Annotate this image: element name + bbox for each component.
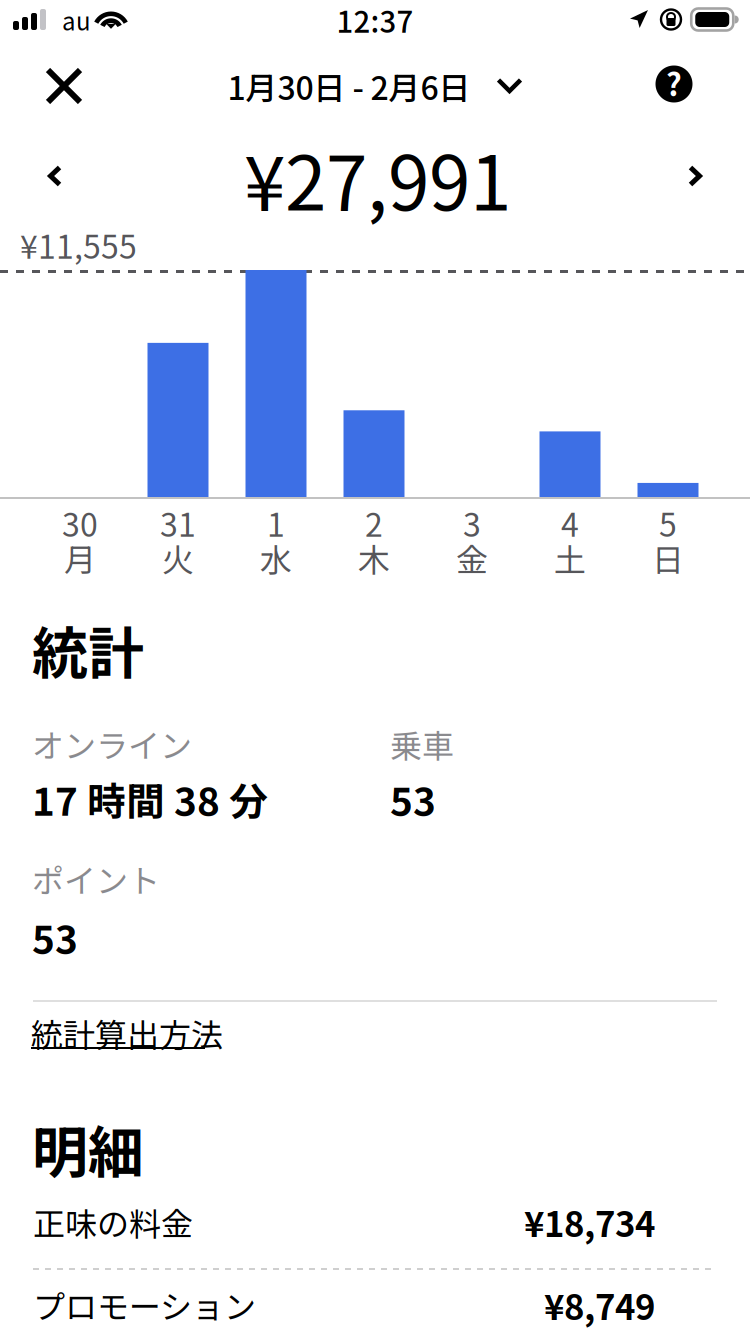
staticText: ¥27,991 bbox=[244, 124, 511, 232]
staticText: 5 bbox=[659, 500, 677, 546]
staticText: プロモーション bbox=[33, 1282, 256, 1328]
staticText: 乗車 bbox=[390, 721, 454, 767]
staticText: 53 bbox=[390, 771, 436, 827]
staticText: 12:37 bbox=[336, 0, 413, 41]
staticText: 月 bbox=[64, 535, 96, 581]
staticText: オンライン bbox=[32, 721, 192, 767]
button[interactable]: 閉じる bbox=[22, 44, 106, 128]
staticText: 17 時間 38 分 bbox=[32, 771, 268, 827]
staticText: 水 bbox=[260, 535, 292, 581]
staticText: 明細 bbox=[32, 1108, 144, 1189]
staticText: ? bbox=[666, 61, 682, 105]
staticText: ¥8,749 bbox=[544, 1280, 655, 1330]
staticText: 53 bbox=[32, 909, 78, 965]
staticText: 正味の料金 bbox=[33, 1199, 193, 1245]
staticText: 3 bbox=[463, 500, 481, 546]
staticText: ¥18,734 bbox=[524, 1197, 655, 1247]
staticText: 火 bbox=[162, 535, 194, 581]
staticText: au bbox=[62, 3, 91, 37]
staticText: ポイント bbox=[32, 856, 160, 902]
staticText: ¥11,555 bbox=[20, 222, 137, 268]
staticText: 31 bbox=[160, 500, 196, 546]
staticText: 金 bbox=[456, 535, 488, 581]
staticText: 土 bbox=[554, 535, 586, 581]
button[interactable]: 統計算出方法 bbox=[31, 1010, 207, 1052]
staticText: 4 bbox=[561, 500, 579, 546]
staticText: 1月30日 - 2月6日 bbox=[227, 63, 470, 109]
staticText: 2 bbox=[365, 500, 383, 546]
button[interactable]: 次の週 bbox=[660, 146, 730, 206]
staticText: 木 bbox=[358, 535, 390, 581]
staticText: 統計算出方法 bbox=[31, 1010, 223, 1056]
staticText: 統計 bbox=[32, 609, 144, 690]
button[interactable]: 前の週 bbox=[20, 146, 90, 206]
staticText: 30 bbox=[62, 500, 98, 546]
staticText: 日 bbox=[652, 535, 684, 581]
button[interactable]: ヘルプ bbox=[632, 42, 716, 126]
button[interactable]: 1月30日 - 2月6日 bbox=[227, 44, 522, 128]
staticText: 1 bbox=[267, 500, 285, 546]
